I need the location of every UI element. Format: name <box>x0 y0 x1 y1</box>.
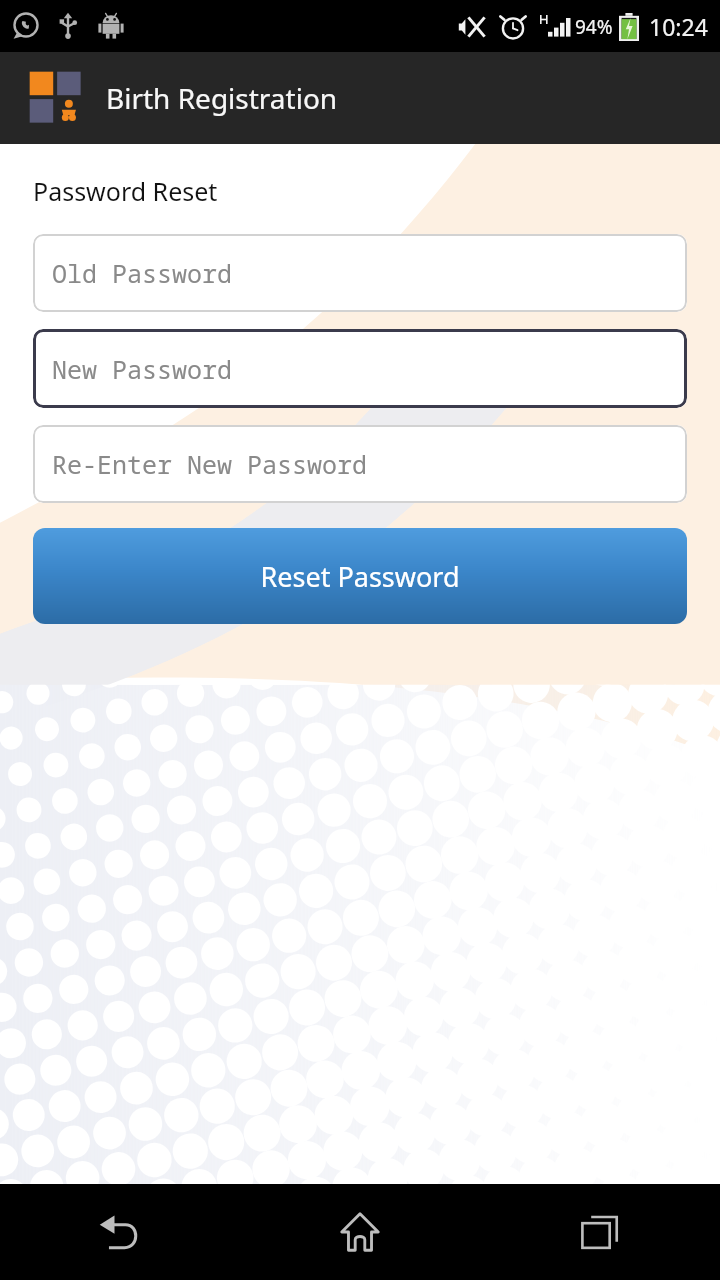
staticText: 10:24 <box>649 11 708 42</box>
staticText: Re-Enter New Password <box>52 447 368 481</box>
button[interactable]: New Password <box>33 329 687 408</box>
button[interactable]: Old Password <box>33 234 687 312</box>
staticText: Birth Registration <box>106 79 338 117</box>
staticText: New Password <box>52 352 233 386</box>
staticText: Password Reset <box>33 174 218 208</box>
button[interactable]: Recent apps <box>480 1184 720 1280</box>
staticText: Reset Password <box>260 558 460 595</box>
button[interactable]: Back <box>0 1184 240 1280</box>
button[interactable]: Home <box>240 1184 480 1280</box>
staticText: Old Password <box>52 256 233 290</box>
button[interactable]: Re-Enter New Password <box>33 425 687 503</box>
staticText: 94% <box>575 14 613 40</box>
button[interactable]: Reset Password <box>33 528 687 624</box>
